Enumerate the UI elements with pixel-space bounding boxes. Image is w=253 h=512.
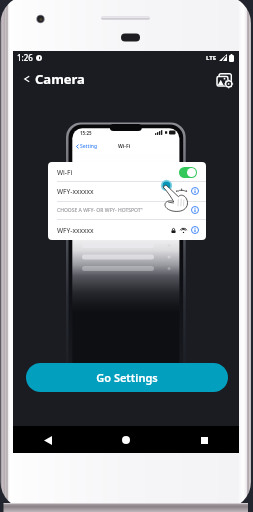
- staticText: Wi-Fi: [57, 168, 73, 177]
- staticText: WFY-xxxxxx: [57, 187, 94, 196]
- staticText: Go Settings: [96, 370, 158, 385]
- staticText: Camera: [35, 70, 85, 88]
- staticText: Setting: [80, 143, 98, 150]
- staticText: 1:26: [17, 52, 33, 63]
- button[interactable]: Home: [115, 429, 137, 451]
- staticText: LTE: [206, 54, 217, 62]
- button[interactable]: Back: [37, 429, 59, 451]
- staticText: WFY-xxxxxx: [57, 226, 94, 235]
- staticText: CHOOSE A WFY- OR WFY- HOTSPOT": [57, 207, 143, 214]
- button[interactable]: Recent apps: [193, 429, 215, 451]
- button[interactable]: Go Settings: [26, 363, 228, 392]
- staticText: 15:25: [80, 130, 92, 136]
- staticText: Wi-Fi: [118, 143, 131, 150]
- button[interactable]: WFY-xxxxxx: [48, 182, 206, 200]
- button[interactable]: WFY-xxxxxx: [48, 220, 206, 240]
- button[interactable]: CHOOSE A WFY- OR WFY- HOTSPOT": [48, 200, 206, 220]
- button[interactable]: Wi-Fi: [48, 162, 206, 182]
- button[interactable]: Photo settings: [212, 67, 236, 91]
- button[interactable]: Camera: [21, 65, 87, 93]
